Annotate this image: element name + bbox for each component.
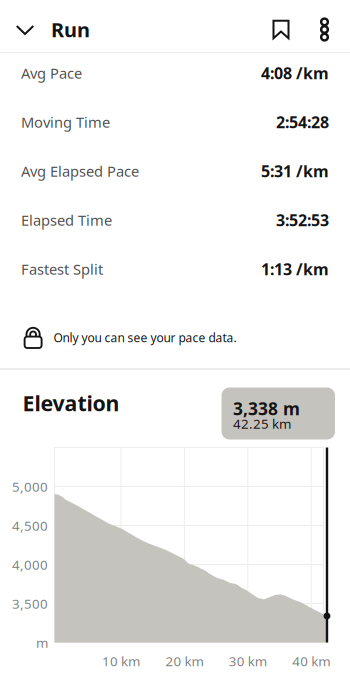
staticText: 42.25 km <box>233 415 291 432</box>
staticText: 30 km <box>229 652 267 670</box>
staticText: 4:08 /km <box>261 62 329 84</box>
staticText: 3,500 <box>12 595 48 612</box>
button[interactable]: More options <box>306 9 342 49</box>
staticText: 20 km <box>165 652 203 670</box>
staticText: Only you can see your pace data. <box>53 329 236 345</box>
staticText: 5:31 /km <box>261 160 329 182</box>
staticText: 10 km <box>102 652 140 670</box>
staticText: 2:54:28 <box>276 111 329 133</box>
staticText: 4,500 <box>12 517 48 534</box>
staticText: 3,338 m <box>233 397 300 420</box>
staticText: Moving Time <box>21 112 110 132</box>
button[interactable]: Collapse <box>5 10 45 50</box>
staticText: Avg Pace <box>21 63 82 83</box>
staticText: Elapsed Time <box>21 210 112 230</box>
staticText: Fastest Split <box>21 259 103 279</box>
staticText: 40 km <box>292 652 330 670</box>
staticText: Run <box>51 16 90 43</box>
staticText: m <box>36 634 48 651</box>
staticText: Avg Elapsed Pace <box>21 161 139 181</box>
staticText: 3:52:53 <box>276 209 329 231</box>
staticText: Elevation <box>22 389 119 417</box>
staticText: 4,000 <box>12 556 48 573</box>
staticText: 5,000 <box>12 478 48 495</box>
staticText: 1:13 /km <box>261 258 329 280</box>
button[interactable]: Save <box>261 9 301 49</box>
